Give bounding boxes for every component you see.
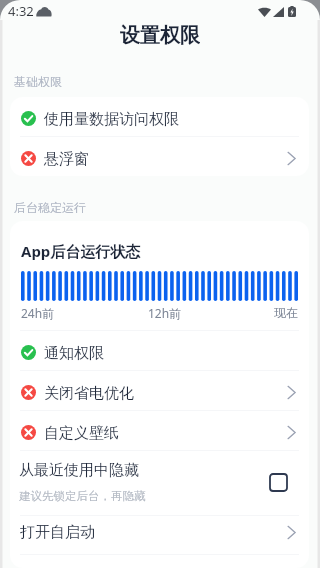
staticText: 基础权限: [14, 74, 62, 87]
button[interactable]: 使用量数据访问权限: [10, 97, 309, 136]
button[interactable]: 打开自启动: [10, 516, 309, 554]
staticText: 关闭省电优化: [44, 384, 287, 403]
staticText: 从最近使用中隐藏: [19, 461, 139, 480]
staticText: 自定义壁纸: [44, 424, 287, 443]
staticText: 悬浮窗: [44, 150, 287, 169]
staticText: 使用量数据访问权限: [44, 110, 296, 129]
button[interactable]: 通知权限: [10, 331, 309, 370]
button[interactable]: 从最近使用中隐藏: [10, 451, 309, 515]
staticText: 建议先锁定后台，再隐藏: [19, 489, 146, 503]
button[interactable]: 自定义壁纸: [10, 411, 309, 450]
staticText: 4:32: [8, 2, 34, 20]
staticText: App后台运行状态: [21, 241, 141, 261]
staticText: 24h前: [21, 305, 55, 321]
staticText: 通知权限: [44, 344, 296, 363]
staticText: 后台稳定运行: [14, 200, 86, 213]
staticText: 12h前: [148, 305, 182, 321]
button[interactable]: 悬浮窗: [10, 137, 309, 176]
staticText: 设置权限: [120, 23, 200, 47]
button[interactable]: 关闭省电优化: [10, 371, 309, 410]
staticText: 打开自启动: [20, 523, 287, 542]
staticText: 现在: [274, 305, 298, 320]
